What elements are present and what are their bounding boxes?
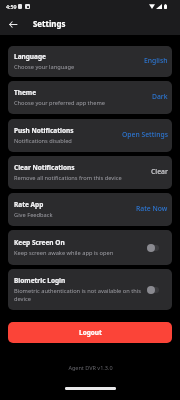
- button[interactable]: Logout: [8, 322, 172, 343]
- button[interactable]: Dark: [152, 91, 168, 104]
- staticText: Choose your language: [14, 63, 75, 71]
- button[interactable]: Back: [0, 13, 25, 35]
- staticText: Agent DVR v1.3.0: [68, 364, 113, 371]
- button[interactable]: Clear Notifications: [8, 156, 172, 189]
- staticText: Clear: [151, 167, 168, 176]
- staticText: Theme: [14, 88, 37, 97]
- staticText: Settings: [33, 19, 66, 30]
- staticText: Biometric Login: [14, 276, 66, 285]
- button[interactable]: Keep Screen On: [8, 230, 172, 265]
- staticText: Remove all notifications from this devic…: [14, 174, 122, 182]
- staticText: Language: [14, 52, 46, 61]
- staticText: Logout: [79, 328, 102, 337]
- button[interactable]: Toggle: [146, 284, 168, 296]
- button[interactable]: Rate App: [8, 193, 172, 226]
- staticText: Biometric authentication is not availabl…: [14, 287, 143, 303]
- staticText: Dark: [152, 92, 168, 101]
- button[interactable]: Open Settings: [122, 129, 168, 142]
- staticText: Notifications disabled: [14, 137, 72, 145]
- staticText: English: [144, 56, 168, 65]
- staticText: Give Feedback: [14, 211, 53, 219]
- button[interactable]: Language: [8, 46, 172, 77]
- staticText: Rate Now: [136, 204, 168, 213]
- button[interactable]: Theme: [8, 81, 172, 114]
- button[interactable]: Toggle: [146, 242, 168, 254]
- staticText: 4:59: [6, 3, 17, 10]
- staticText: Keep Screen On: [14, 238, 65, 247]
- button[interactable]: Rate Now: [136, 203, 168, 216]
- button[interactable]: Push Notifications: [8, 119, 172, 152]
- staticText: Push Notifications: [14, 126, 74, 135]
- staticText: Choose your preferred app theme: [14, 99, 105, 107]
- staticText: Rate App: [14, 200, 44, 209]
- button[interactable]: Biometric Login: [8, 269, 172, 310]
- button[interactable]: English: [144, 55, 168, 68]
- button[interactable]: Clear: [151, 166, 168, 179]
- staticText: Open Settings: [122, 130, 168, 139]
- staticText: Clear Notifications: [14, 163, 75, 172]
- staticText: Keep screen awake while app is open: [14, 249, 114, 257]
